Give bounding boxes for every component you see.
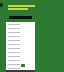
- button[interactable]: [6, 50, 35, 54]
- button[interactable]: [6, 42, 35, 46]
- button[interactable]: [6, 46, 35, 50]
- button[interactable]: [6, 62, 35, 66]
- button[interactable]: [6, 54, 35, 58]
- button[interactable]: [6, 26, 35, 30]
- button[interactable]: [6, 38, 35, 42]
- button[interactable]: Back: [0, 3, 3, 7]
- button[interactable]: [6, 22, 35, 26]
- button[interactable]: [6, 66, 35, 70]
- button[interactable]: Action: [21, 64, 25, 67]
- button[interactable]: [6, 34, 35, 38]
- button[interactable]: [6, 30, 35, 34]
- button[interactable]: [6, 58, 35, 62]
